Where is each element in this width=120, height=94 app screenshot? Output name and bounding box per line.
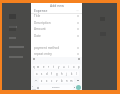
button[interactable]: f <box>49 71 54 76</box>
staticText: Title <box>34 14 41 18</box>
button[interactable]: g <box>54 71 59 76</box>
button[interactable]: i <box>66 64 71 69</box>
staticText: e <box>43 65 45 69</box>
button[interactable]: o <box>71 64 76 69</box>
staticText: n <box>66 79 68 83</box>
button[interactable]: c <box>49 78 54 83</box>
staticText: Description <box>34 21 51 25</box>
staticText: ?123 <box>32 85 36 90</box>
button[interactable]: m <box>69 78 74 83</box>
staticText: k <box>71 72 73 76</box>
button[interactable]: w <box>36 64 41 69</box>
button[interactable]: j <box>64 71 69 76</box>
button[interactable]: Amount <box>31 26 82 32</box>
button[interactable]: repeat entry <box>31 51 82 57</box>
button[interactable]: u <box>61 64 66 69</box>
staticText: w <box>37 65 40 69</box>
button[interactable]: Emoji <box>36 85 39 90</box>
staticText: r <box>48 65 50 69</box>
button[interactable]: d <box>44 71 49 76</box>
button[interactable]: Date <box>31 33 82 39</box>
button[interactable]: Expense <box>34 8 79 13</box>
staticText: English <box>52 86 60 89</box>
staticText: c <box>51 79 53 83</box>
staticText: s <box>41 72 43 76</box>
button[interactable]: v <box>54 78 59 83</box>
button[interactable]: s <box>39 71 44 76</box>
staticText: j <box>66 72 67 76</box>
button[interactable]: x <box>44 78 49 83</box>
button[interactable]: Period <box>73 85 76 90</box>
staticText: m <box>70 79 73 83</box>
button[interactable]: Add new <box>31 3 82 8</box>
button[interactable]: y <box>56 64 61 69</box>
button[interactable]: l <box>74 71 79 76</box>
staticText: q <box>33 65 35 69</box>
button[interactable]: Enter <box>76 85 81 90</box>
staticText: Expense <box>34 8 48 13</box>
button[interactable]: a <box>34 71 39 76</box>
button[interactable]: Description <box>31 20 82 26</box>
staticText: l <box>76 72 77 76</box>
staticText: payment method <box>34 46 60 50</box>
button[interactable]: n <box>64 78 69 83</box>
button[interactable]: Symbols <box>32 85 36 90</box>
button[interactable]: e <box>41 64 46 69</box>
button[interactable]: Backspace <box>74 78 81 83</box>
button[interactable]: payment method <box>31 45 82 51</box>
button[interactable]: Title <box>31 13 82 19</box>
staticText: z <box>41 79 43 83</box>
staticText: Amount <box>34 27 46 31</box>
button[interactable]: q <box>32 64 36 69</box>
staticText: u <box>63 65 65 69</box>
staticText: h <box>61 72 63 76</box>
staticText: Add new <box>50 3 64 8</box>
button[interactable]: k <box>69 71 74 76</box>
button[interactable]: Space <box>39 85 73 90</box>
staticText: g <box>56 72 58 76</box>
staticText: t <box>53 65 54 69</box>
button[interactable]: z <box>39 78 44 83</box>
staticText: d <box>46 72 48 76</box>
staticText: x <box>46 79 48 83</box>
staticText: o <box>73 65 75 69</box>
button[interactable]: Shift <box>32 78 39 83</box>
staticText: b <box>61 79 63 83</box>
staticText: repeat entry <box>34 52 52 56</box>
staticText: i <box>68 65 69 69</box>
button[interactable]: r <box>46 64 51 69</box>
staticText: a <box>36 72 38 76</box>
button[interactable]: t <box>51 64 56 69</box>
button[interactable]: p <box>76 64 81 69</box>
button[interactable]: h <box>59 71 64 76</box>
other: Expand <box>76 9 79 12</box>
staticText: Date <box>34 34 41 38</box>
staticText: p <box>78 65 80 69</box>
staticText: f <box>51 72 52 76</box>
staticText: y <box>58 65 60 69</box>
button[interactable]: b <box>59 78 64 83</box>
staticText: v <box>56 79 58 83</box>
